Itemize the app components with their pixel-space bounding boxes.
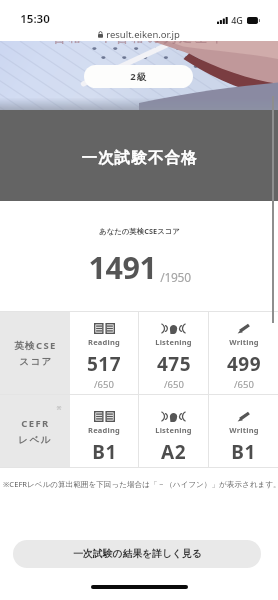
staticText: 合格・不合格の判定基準 (53, 41, 226, 46)
staticText: 15:30 (20, 11, 50, 27)
staticText: /1950 (160, 269, 191, 285)
staticText: Reading (88, 337, 120, 347)
staticText: 475 (157, 351, 191, 377)
staticText: 2級 (130, 70, 148, 83)
staticText: レベル (18, 434, 52, 446)
staticText: CEFR (21, 417, 50, 430)
staticText: /650 (94, 378, 114, 391)
staticText: Writing (229, 425, 259, 435)
staticText: あなたの英検CSEスコア (99, 226, 180, 236)
staticText: Listening (155, 337, 192, 347)
staticText: result.eiken.or.jp (106, 28, 180, 41)
staticText: B1 (92, 439, 117, 465)
staticText: ※ (56, 404, 62, 412)
staticText: Reading (88, 425, 120, 435)
staticText: /650 (164, 378, 184, 391)
staticText: Writing (229, 337, 259, 347)
staticText: A2 (161, 439, 186, 465)
staticText: 一次試験の結果を詳しく見る (73, 548, 202, 560)
staticText: 499 (227, 351, 261, 377)
staticText: スコア (19, 356, 53, 368)
staticText: 英検CSE (14, 339, 57, 352)
staticText: Listening (155, 425, 192, 435)
staticText: 4G (231, 14, 243, 26)
staticText: ※CEFRレベルの算出範囲を下回った場合は「－（ハイフン）」が表示されます。 (3, 479, 278, 489)
staticText: B1 (231, 439, 256, 465)
staticText: /650 (234, 378, 254, 391)
button[interactable]: 2級 (84, 65, 193, 88)
button[interactable]: 一次試験の結果を詳しく見る (13, 540, 261, 568)
staticText: 1491 (88, 246, 157, 288)
staticText: 一次試験不合格 (81, 148, 198, 168)
staticText: 517 (87, 351, 121, 377)
